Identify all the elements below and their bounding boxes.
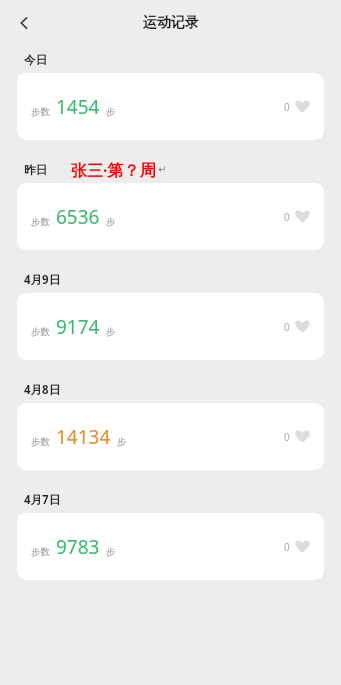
staticText: 昨日 <box>24 163 47 177</box>
staticText: 步 <box>106 106 116 118</box>
button[interactable]: 步数 <box>17 183 324 250</box>
staticText: 今日 <box>24 53 47 67</box>
button[interactable]: 步数 <box>17 73 324 140</box>
button[interactable]: Back <box>6 5 42 41</box>
staticText: 1454 <box>56 94 100 120</box>
staticText: 6536 <box>56 204 100 230</box>
staticText: 步 <box>106 216 116 228</box>
staticText: 4月9日 <box>24 272 61 288</box>
staticText: 0 <box>284 320 290 334</box>
staticText: 步数 <box>31 436 50 448</box>
button[interactable]: 步数 <box>17 403 324 470</box>
staticText: 步数 <box>31 546 50 558</box>
staticText: 14134 <box>56 424 111 450</box>
button[interactable]: 步数 <box>17 513 324 580</box>
staticText: 步 <box>106 326 116 338</box>
staticText: 0 <box>284 540 290 554</box>
staticText: 9174 <box>56 314 100 340</box>
staticText: 步 <box>106 546 116 558</box>
staticText: 步数 <box>31 326 50 338</box>
staticText: 运动记录 <box>143 14 199 32</box>
button[interactable]: 步数 <box>17 293 324 360</box>
staticText: 4月8日 <box>24 382 61 398</box>
staticText: 0 <box>284 210 290 224</box>
staticText: ↵ <box>158 164 167 176</box>
staticText: 0 <box>284 430 290 444</box>
staticText: 4月7日 <box>24 492 61 508</box>
staticText: 张三·第？周 <box>71 159 156 181</box>
staticText: 步数 <box>31 216 50 228</box>
staticText: 步数 <box>31 106 50 118</box>
staticText: 9783 <box>56 534 100 560</box>
staticText: 0 <box>284 100 290 114</box>
staticText: 步 <box>117 436 127 448</box>
